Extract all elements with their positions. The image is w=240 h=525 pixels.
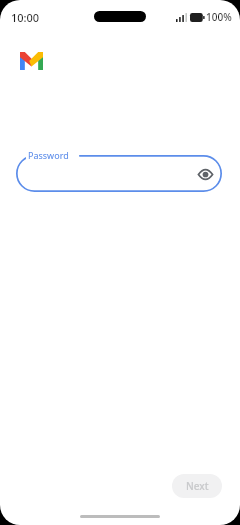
button[interactable]: Show password	[16, 155, 222, 192]
button[interactable]: Show password	[193, 162, 217, 186]
staticText: Password	[28, 149, 69, 161]
button[interactable]: Next	[172, 474, 222, 498]
staticText: 100%	[206, 10, 232, 24]
staticText: Next	[186, 479, 209, 493]
staticText: 10:00	[11, 10, 40, 25]
